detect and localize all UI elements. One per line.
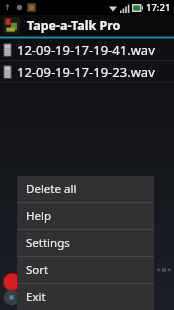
button[interactable]: Exit	[17, 284, 154, 310]
button[interactable]: Record	[0, 267, 23, 297]
button[interactable]: Delete all	[17, 176, 154, 202]
staticText: 17:21	[146, 1, 171, 14]
button[interactable]: 12-09-19-17-19-41.wav	[0, 39, 174, 61]
staticText: Delete all	[26, 181, 77, 197]
staticText: Sort	[26, 262, 49, 278]
staticText: Exit	[26, 289, 46, 305]
staticText: 12-09-19-17-19-41.wav	[17, 41, 155, 59]
button[interactable]: Help	[17, 203, 154, 229]
button[interactable]: 12-09-19-17-19-23.wav	[0, 61, 174, 83]
button[interactable]: More options	[154, 264, 174, 276]
button[interactable]: Settings	[17, 230, 154, 256]
button[interactable]: Stop	[0, 284, 23, 310]
staticText: Help	[26, 208, 52, 224]
button[interactable]: Sort	[17, 257, 154, 283]
staticText: 12-09-19-17-19-23.wav	[17, 63, 155, 81]
staticText: Tape-a-Talk Pro	[27, 17, 121, 34]
staticText: Settings	[26, 235, 70, 251]
